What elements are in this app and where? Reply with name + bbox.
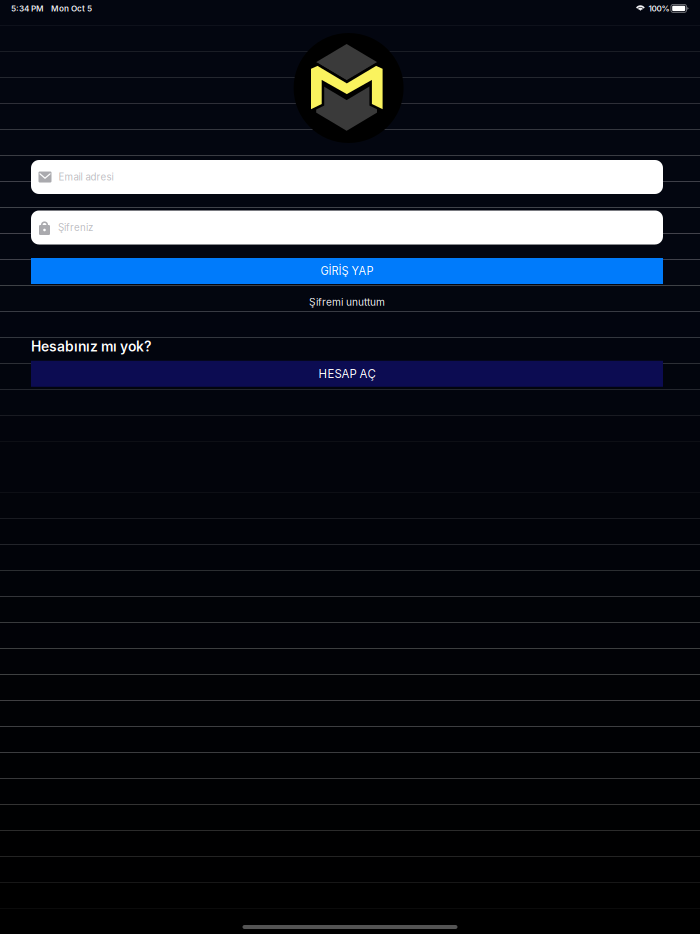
button[interactable]: GİRİŞ YAP: [31, 258, 663, 284]
staticText: Şifreniz: [58, 222, 93, 233]
staticText: Şifremi unuttum: [309, 296, 385, 308]
staticText: GİRİŞ YAP: [320, 264, 373, 278]
button[interactable]: HESAP AÇ: [31, 361, 663, 387]
staticText: 100%: [648, 3, 669, 13]
staticText: Email adresi: [58, 171, 113, 183]
staticText: HESAP AÇ: [318, 367, 375, 381]
staticText: Mon Oct 5: [51, 3, 92, 13]
staticText: Hesabınız mı yok?: [31, 338, 152, 355]
staticText: 5:34 PM: [11, 3, 44, 13]
button[interactable]: Şifremi unuttum: [31, 292, 663, 312]
